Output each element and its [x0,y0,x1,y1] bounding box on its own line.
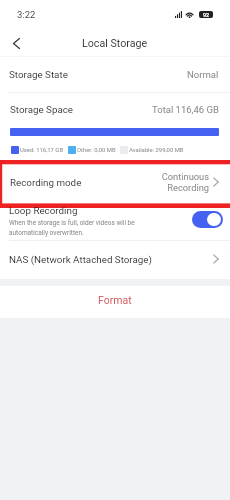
staticText: Other: 0,00 MB [77,147,116,154]
staticText: Storage State [9,69,68,80]
button[interactable]: Storage State [0,57,230,92]
button[interactable]: Loop Recording toggle [192,211,223,228]
staticText: Storage Space [10,104,74,115]
staticText: 92 [203,12,210,18]
staticText: Recording mode [10,177,82,188]
staticText: When the storage is full, older videos w… [9,219,135,236]
staticText: Available: 299,00 MB [129,147,184,154]
staticText: Loop Recording [9,205,78,216]
staticText: Used: 116,17 GB [20,147,64,154]
staticText: NAS (Network Attached Storage) [9,254,152,265]
button[interactable]: Loop Recording [0,208,230,240]
staticText: Continuous Recording [161,171,209,193]
staticText: Normal [187,69,219,80]
staticText: Format [98,294,132,306]
button[interactable]: Format [0,286,230,318]
button[interactable]: Recording mode [0,160,230,208]
button[interactable]: Back [0,30,31,56]
staticText: Local Storage [82,37,148,50]
button[interactable]: NAS (Network Attached Storage) [0,241,230,279]
staticText: Total 116,46 GB [152,104,219,115]
staticText: 3:22 [17,9,36,20]
